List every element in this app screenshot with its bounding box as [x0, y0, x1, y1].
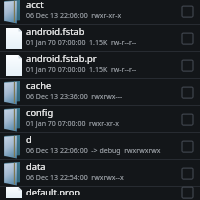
staticText: default.prop [26, 186, 81, 195]
staticText: android.fstab.pr [26, 52, 97, 65]
button[interactable]: Select item [176, 81, 198, 103]
staticText: 01 Jan 70 07:00:00 rwxr-xr-x [26, 119, 119, 129]
staticText: 01 Jan 70 07:00:00 1.15K rw-r--r-- [26, 65, 137, 75]
staticText: android.fstab [26, 25, 85, 38]
button[interactable]: data [0, 160, 200, 186]
staticText: data [26, 160, 46, 173]
button[interactable]: android.fstab [0, 25, 200, 51]
button[interactable]: Select item [176, 27, 198, 49]
staticText: cache [26, 79, 52, 92]
button[interactable]: config [0, 106, 200, 132]
staticText: 06 Dec 13 22:06:00 -> debug rwxrwxrwx [26, 146, 161, 156]
button[interactable]: Select item [176, 135, 198, 157]
staticText: 06 Dec 13 23:36:00 rwxrwx--- [26, 92, 123, 102]
staticText: config [26, 106, 54, 119]
button[interactable]: android.fstab.pr [0, 52, 200, 78]
staticText: 06 Dec 13 22:54:00 rwxrwx--x [26, 173, 124, 183]
staticText: 06 Dec 13 22:06:00 rwxr-xr-x [26, 11, 122, 21]
staticText: acct [26, 0, 44, 11]
button[interactable]: default.prop [0, 187, 200, 198]
button[interactable]: Select item [176, 108, 198, 130]
staticText: d [26, 133, 32, 146]
button[interactable]: Select item [176, 162, 198, 184]
button[interactable]: Select item [176, 187, 198, 198]
button[interactable]: d [0, 133, 200, 159]
staticText: 01 Jan 70 07:00:00 1.15K rw-r--r-- [26, 38, 137, 48]
button[interactable]: Select item [176, 54, 198, 76]
button[interactable]: Select item [176, 0, 198, 22]
button[interactable]: cache [0, 79, 200, 105]
button[interactable]: acct [0, 0, 200, 24]
